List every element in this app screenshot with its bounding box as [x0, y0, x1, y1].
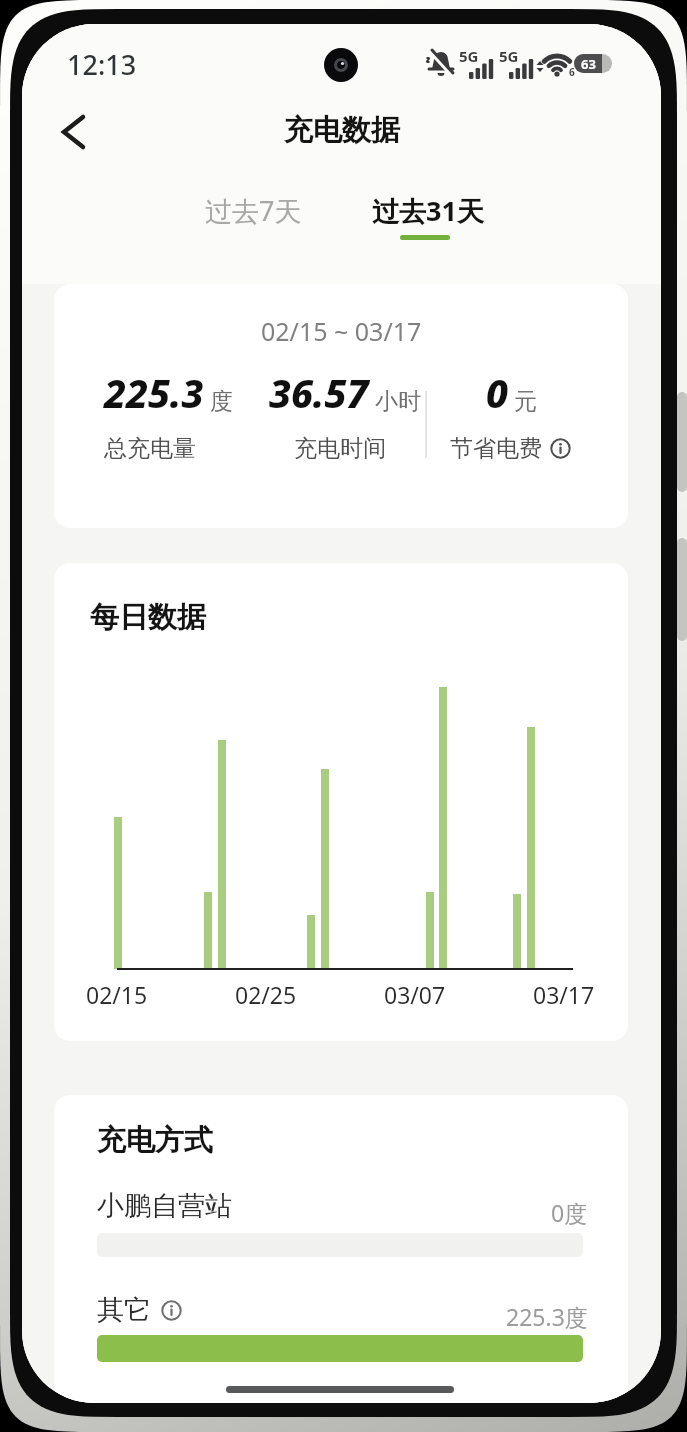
staticText: 度 [210, 387, 233, 416]
staticText: 225.3 [104, 366, 204, 419]
staticText: 6 [569, 65, 575, 79]
staticText: 63 [581, 55, 596, 73]
staticText: 小时 [375, 387, 421, 416]
button[interactable]: 其它 [97, 1293, 182, 1327]
staticText: 每日数据 [90, 599, 206, 636]
button[interactable] [46, 104, 102, 160]
staticText: 总充电量 [104, 434, 196, 463]
staticText: 小鹏自营站 [97, 1189, 232, 1223]
staticText: 02/25 [235, 979, 297, 1010]
staticText: 03/07 [384, 979, 446, 1010]
staticText: 225.3度 [506, 1301, 588, 1332]
staticText: 充电数据 [284, 112, 400, 149]
button[interactable]: 过去7天 [163, 190, 343, 230]
staticText: 0 [486, 366, 508, 419]
staticText: 其它 [97, 1293, 151, 1327]
staticText: 03/17 [533, 979, 595, 1010]
staticText: 充电时间 [294, 434, 386, 463]
staticText: 0度 [551, 1197, 588, 1228]
staticText: 36.57 [269, 366, 369, 419]
staticText: 12:13 [67, 46, 137, 83]
staticText: 过去7天 [205, 192, 302, 229]
staticText: 过去31天 [372, 192, 484, 229]
button[interactable]: 节省电费 [410, 428, 610, 468]
staticText: 02/15 [86, 979, 148, 1010]
staticText: 充电方式 [97, 1122, 213, 1159]
button[interactable]: 过去31天 [338, 190, 518, 230]
staticText: 5G [499, 46, 519, 66]
staticText: 5G [459, 46, 479, 66]
staticText: 02/15 ~ 03/17 [261, 314, 422, 348]
staticText: 元 [514, 387, 537, 416]
staticText: 节省电费 [450, 434, 542, 463]
